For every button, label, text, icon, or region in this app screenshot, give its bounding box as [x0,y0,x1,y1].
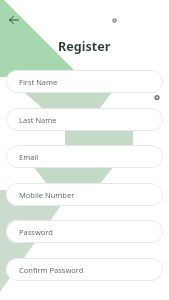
staticText: Password [19,227,53,237]
button[interactable]: Settings [108,14,120,26]
button[interactable]: Mobile Number [6,183,163,206]
button[interactable]: Last Name [6,108,163,131]
staticText: Email [19,152,39,162]
staticText: Last Name [19,115,57,125]
button[interactable]: First Name [6,70,163,93]
staticText: Register [58,38,111,55]
button[interactable]: Email [6,145,163,168]
button[interactable]: Password [6,220,163,243]
staticText: Confirm Password [19,265,84,275]
button[interactable]: Back [2,8,26,32]
staticText: Mobile Number [19,190,75,200]
button[interactable]: Confirm Password [6,258,163,281]
staticText: First Name [19,77,58,87]
